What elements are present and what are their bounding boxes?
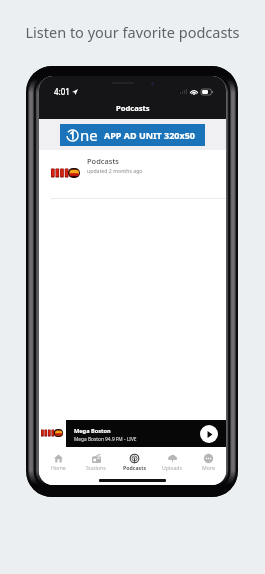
button[interactable]: ne: [60, 124, 205, 146]
button[interactable]: Mega Boston: [66, 420, 226, 447]
staticText: APP AD UNIT 320x50: [104, 129, 195, 141]
staticText: Podcasts: [123, 464, 146, 471]
staticText: Podcasts: [116, 103, 150, 113]
staticText: Mega Boston: [74, 427, 111, 435]
button[interactable]: Uploads: [153, 447, 191, 471]
button[interactable]: Stations: [77, 447, 115, 471]
staticText: More: [202, 464, 215, 471]
staticText: Listen to your favorite podcasts: [0, 22, 265, 42]
staticText: Stations: [86, 464, 106, 471]
staticText: ne: [80, 125, 98, 145]
button[interactable]: Home: [39, 447, 77, 471]
button[interactable]: More: [191, 447, 226, 471]
staticText: Mega Boston 94.9 FM - LIVE: [74, 436, 137, 443]
button[interactable]: Podcasts: [39, 150, 226, 198]
staticText: Home: [51, 464, 66, 471]
staticText: updated 2 months ago: [87, 167, 143, 174]
staticText: Uploads: [162, 464, 183, 471]
button[interactable]: Play: [200, 425, 218, 443]
staticText: 4:01: [54, 86, 70, 97]
staticText: Podcasts: [87, 156, 119, 166]
button[interactable]: Podcasts: [115, 447, 153, 471]
